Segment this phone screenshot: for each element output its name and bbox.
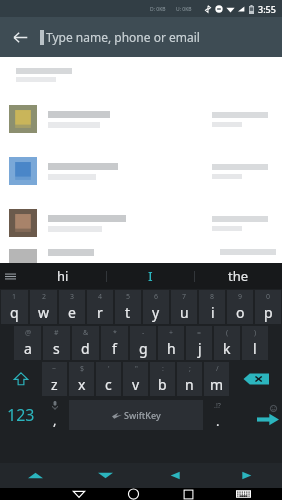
button[interactable]: $ — [69, 362, 94, 396]
button[interactable]: + — [158, 326, 184, 360]
staticText: q — [10, 303, 19, 322]
staticText: D: 0KB — [150, 6, 166, 13]
button[interactable]: 5 — [115, 290, 141, 324]
staticText: 9 — [238, 292, 243, 302]
button[interactable] — [0, 197, 282, 249]
button[interactable]: hi — [20, 263, 106, 289]
staticText: hi — [57, 267, 69, 285]
button[interactable]: I — [107, 263, 194, 289]
staticText: + — [169, 328, 174, 338]
staticText: k — [223, 339, 231, 358]
staticText: b — [158, 375, 167, 394]
button[interactable]: 123 — [1, 398, 41, 432]
staticText: : — [162, 364, 164, 374]
staticText: r — [97, 303, 103, 322]
staticText: y — [152, 303, 160, 322]
button[interactable]: 2 — [30, 290, 57, 324]
button[interactable]: 4 — [87, 290, 113, 324]
staticText: x — [78, 375, 86, 394]
button[interactable]: Scroll down — [70, 463, 140, 488]
button[interactable]: Recent apps — [161, 488, 216, 500]
button[interactable] — [0, 145, 282, 197]
staticText: u — [180, 303, 189, 322]
button[interactable]: Enter — [231, 398, 281, 432]
button[interactable]: ) — [242, 326, 268, 360]
button[interactable]: - — [130, 326, 156, 360]
button[interactable] — [0, 249, 282, 263]
staticText: l — [253, 339, 257, 358]
button[interactable]: Back — [0, 17, 40, 57]
button[interactable]: " — [123, 362, 148, 396]
button[interactable]: Backspace — [231, 362, 281, 396]
button[interactable]: 8 — [199, 290, 225, 324]
button[interactable]: Back — [51, 488, 106, 500]
staticText: f — [112, 339, 117, 358]
button[interactable]: 3 — [59, 290, 85, 324]
button[interactable]: Move left — [140, 463, 211, 488]
staticText: t — [125, 303, 131, 322]
button[interactable]: ' — [96, 362, 121, 396]
staticText: Type name, phone or email — [46, 29, 200, 45]
button[interactable]: ; — [177, 362, 202, 396]
staticText: ' — [108, 364, 110, 374]
staticText: 7 — [182, 292, 187, 302]
button[interactable]: Home — [106, 488, 161, 500]
button[interactable]: & — [72, 326, 99, 360]
staticText: w — [38, 303, 50, 322]
staticText: g — [139, 339, 148, 358]
button[interactable]: , — [43, 398, 67, 432]
button[interactable]: 6 — [143, 290, 169, 324]
staticText: * — [113, 328, 117, 338]
staticText: 3:55 — [258, 3, 276, 15]
staticText: 1 — [12, 292, 17, 302]
staticText: 4 — [98, 292, 103, 302]
staticText: , — [53, 411, 57, 429]
staticText: " — [135, 364, 138, 374]
staticText: ( — [226, 328, 229, 338]
button[interactable]: ( — [214, 326, 240, 360]
button[interactable]: Space — [69, 400, 203, 430]
button[interactable]: * — [101, 326, 128, 360]
button[interactable]: Scroll up — [0, 463, 70, 488]
button[interactable] — [0, 93, 282, 145]
staticText: s — [53, 339, 60, 358]
staticText: c — [105, 375, 112, 394]
staticText: 8 — [210, 292, 215, 302]
staticText: m — [210, 375, 224, 394]
staticText: / — [216, 364, 219, 374]
staticText: a — [24, 339, 32, 358]
staticText: ; — [189, 364, 191, 374]
staticText: p — [264, 303, 273, 322]
button[interactable]: Switch keyboard — [216, 488, 271, 500]
button[interactable]: Shift — [1, 362, 40, 396]
button[interactable]: Move right — [211, 463, 282, 488]
staticText: d — [81, 339, 90, 358]
staticText: = — [197, 328, 202, 338]
button[interactable]: .!? — [205, 398, 229, 432]
button[interactable]: 7 — [171, 290, 197, 324]
button[interactable]: / — [204, 362, 229, 396]
staticText: SwiftKey — [124, 409, 161, 421]
button[interactable]: 0 — [255, 290, 281, 324]
button[interactable]: : — [150, 362, 175, 396]
staticText: ~ — [52, 364, 57, 374]
staticText: ) — [254, 328, 257, 338]
button[interactable]: = — [186, 326, 212, 360]
button[interactable]: # — [43, 326, 70, 360]
staticText: $ — [80, 364, 85, 374]
staticText: & — [83, 328, 89, 338]
staticText: i — [211, 303, 215, 322]
staticText: 123 — [7, 404, 35, 426]
staticText: 0 — [266, 292, 271, 302]
staticText: e — [68, 303, 76, 322]
button[interactable]: 9 — [227, 290, 253, 324]
button[interactable]: ~ — [42, 362, 67, 396]
button[interactable]: @ — [14, 326, 41, 360]
button[interactable]: the — [195, 263, 282, 289]
staticText: # — [54, 328, 59, 338]
staticText: 3 — [70, 292, 75, 302]
staticText: n — [185, 375, 194, 394]
button[interactable]: 1 — [1, 290, 28, 324]
button[interactable]: Keyboard menu — [0, 263, 20, 289]
staticText: j — [198, 339, 202, 358]
